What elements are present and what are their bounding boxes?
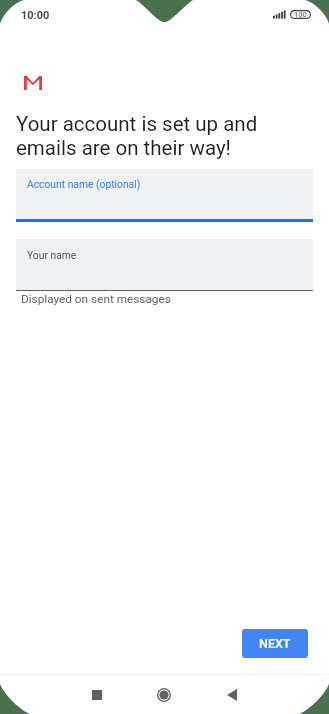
staticText: Your name bbox=[27, 249, 77, 261]
button[interactable]: Your name bbox=[16, 239, 313, 290]
staticText: Displayed on sent messages bbox=[21, 292, 171, 306]
button[interactable]: Home bbox=[109, 675, 219, 714]
button[interactable]: Account name (optional) bbox=[16, 169, 313, 219]
button[interactable]: NEXT bbox=[242, 629, 308, 658]
button[interactable]: Back bbox=[219, 675, 329, 714]
staticText: Your account is set up and emails are on… bbox=[16, 112, 278, 160]
button[interactable]: Recent apps bbox=[0, 675, 109, 714]
staticText: NEXT bbox=[259, 636, 291, 651]
staticText: 10:00 bbox=[21, 9, 50, 22]
staticText: 100 bbox=[294, 10, 307, 19]
staticText: Account name (optional) bbox=[27, 178, 141, 190]
